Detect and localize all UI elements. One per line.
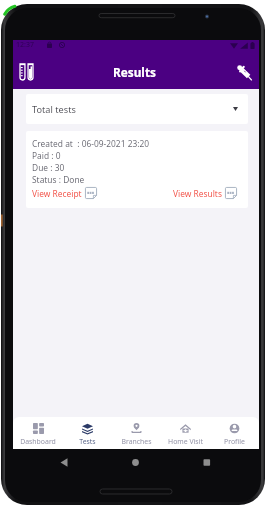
staticText: Created at : 06-09-2021 23:20 [32,138,150,149]
staticText: Total tests [32,103,76,116]
button[interactable]: Tests [63,417,112,449]
button[interactable]: View Results [173,187,237,199]
staticText: Due : 30 [32,162,65,173]
staticText: Home Visit [168,437,203,446]
button[interactable]: Tests [13,59,39,85]
staticText: Tests [79,437,96,446]
button[interactable]: View Receipt [32,187,97,199]
staticText: Branches [121,437,152,446]
staticText: Profile [224,437,245,446]
staticText: View Results [173,188,222,199]
staticText: View Receipt [32,188,82,199]
button[interactable]: Total tests [26,94,248,124]
button[interactable]: Dashboard [13,417,63,449]
button[interactable]: Profile [210,417,259,449]
staticText: Paid : 0 [32,150,61,161]
button[interactable]: Home Visit [161,417,210,449]
staticText: 12:37 [16,40,34,50]
staticText: Dashboard [20,437,56,446]
staticText: Status : Done [32,174,85,185]
button[interactable]: Add sample [231,59,257,85]
button[interactable]: Branches [112,417,161,449]
button[interactable]: Created at : 06-09-2021 23:20 [26,131,248,208]
staticText: Results [113,64,156,80]
